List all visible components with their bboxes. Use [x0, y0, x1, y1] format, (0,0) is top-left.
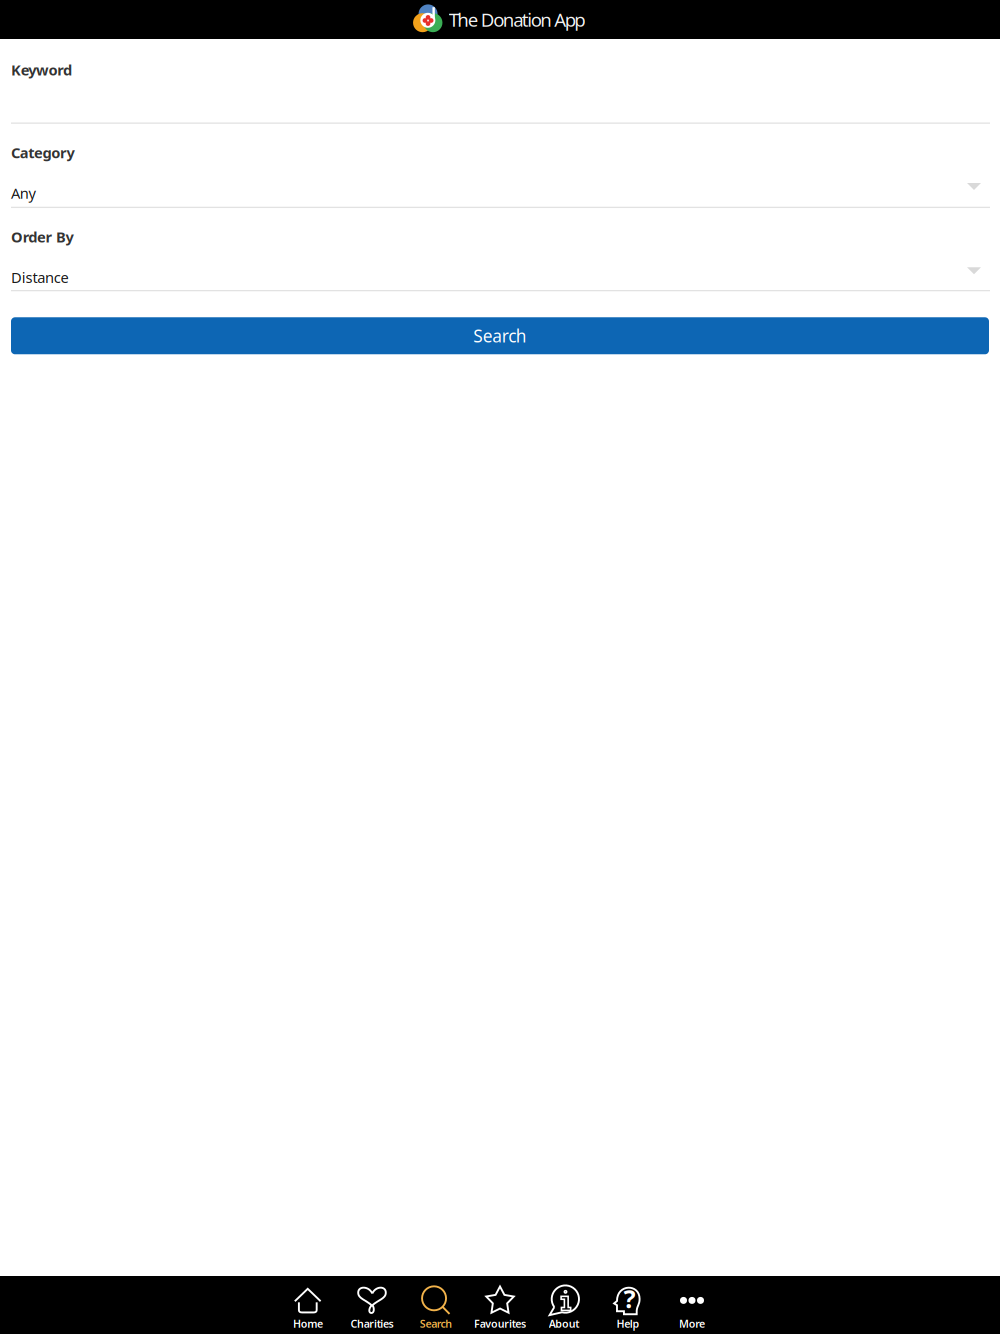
staticText: Search [473, 324, 527, 347]
staticText: Distance [11, 267, 69, 287]
staticText: Order By [11, 227, 74, 246]
button[interactable]: ? [596, 1276, 660, 1334]
button[interactable]: Search [404, 1276, 468, 1334]
staticText: Help [616, 1316, 639, 1331]
button[interactable]: Favourites [468, 1276, 532, 1334]
button[interactable]: Distance [0, 267, 1000, 287]
button[interactable]: Charities [340, 1276, 404, 1334]
staticText: Search [420, 1316, 452, 1331]
staticText: ? [623, 1282, 635, 1315]
staticText: About [549, 1316, 579, 1331]
button[interactable]: Home [276, 1276, 340, 1334]
staticText: Keyword [11, 60, 72, 79]
button[interactable]: Any [0, 183, 1000, 203]
button[interactable]: More [660, 1276, 724, 1334]
staticText: Home [293, 1316, 323, 1331]
staticText: The Donation App [449, 7, 585, 32]
staticText: Charities [350, 1316, 394, 1331]
button[interactable]: Search [11, 317, 989, 354]
staticText: Category [11, 143, 75, 162]
button[interactable]: About [532, 1276, 596, 1334]
staticText: Favourites [474, 1316, 526, 1331]
staticText: Any [11, 183, 36, 203]
staticText: More [679, 1316, 705, 1331]
